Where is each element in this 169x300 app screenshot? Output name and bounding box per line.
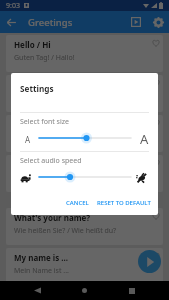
button[interactable]: Hello / Hi (6, 35, 163, 72)
button[interactable]: Favourite (148, 208, 163, 223)
button[interactable]: Favourite (148, 248, 163, 263)
staticText: My name is ... (14, 252, 69, 263)
staticText: Guten Abend (14, 133, 58, 143)
button[interactable]: My name is ... (6, 248, 163, 285)
staticText: Wie heißen Sie? / Wie heißt du? (14, 226, 117, 236)
staticText: Guten Morgen (14, 93, 63, 103)
staticText: Good evening (14, 119, 69, 130)
button[interactable]: Slideshow (125, 11, 147, 33)
button[interactable]: Slider (39, 133, 131, 143)
button[interactable]: Back (0, 11, 22, 33)
button[interactable]: Play all (138, 250, 161, 273)
staticText: 9:03 (6, 1, 20, 11)
button[interactable]: Good morning (6, 75, 163, 112)
staticText: Select audio speed (20, 156, 82, 166)
staticText: A (140, 130, 149, 148)
button[interactable]: Favourite (148, 75, 163, 90)
staticText: RESET TO DEFAULT (97, 199, 151, 207)
button[interactable]: Slider (39, 172, 131, 182)
button[interactable]: Good evening (6, 115, 163, 152)
staticText: CANCEL (66, 199, 89, 207)
button[interactable]: RESET TO DEFAULT (93, 196, 155, 210)
button[interactable]: Home (75, 281, 94, 300)
button[interactable]: Recents (122, 281, 141, 300)
staticText: Good morning (14, 79, 72, 90)
staticText: Auf Wiedersehen (14, 173, 71, 183)
button[interactable]: Favourite (148, 35, 163, 50)
staticText: Greetings (28, 16, 73, 29)
staticText: Guten Tag! / Hallo! (14, 53, 75, 63)
button[interactable]: Goodbye (6, 155, 163, 192)
staticText: A (25, 134, 31, 145)
button[interactable]: Favourite (148, 115, 163, 130)
button[interactable]: Favourite (148, 155, 163, 170)
button[interactable]: CANCEL (62, 196, 93, 210)
staticText: Hello / Hi (14, 39, 51, 50)
staticText: Mein Name ist ... (14, 266, 69, 276)
staticText: Select font size (20, 117, 69, 127)
button[interactable]: Back (28, 281, 47, 300)
staticText: What's your name? (14, 212, 91, 223)
button[interactable]: Settings (147, 11, 169, 33)
staticText: Goodbye (14, 159, 50, 170)
button[interactable]: What's your name? (6, 208, 163, 245)
staticText: Settings (20, 83, 54, 94)
